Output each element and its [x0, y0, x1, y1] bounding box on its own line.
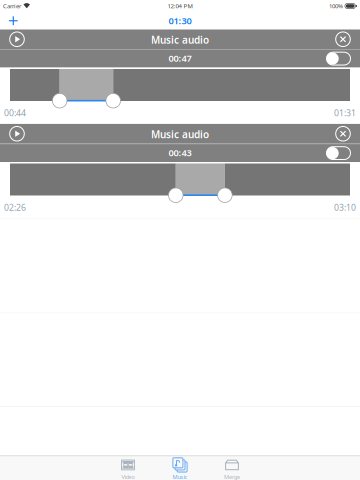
- button[interactable]: Play: [0, 30, 30, 49]
- staticText: Music audio: [151, 127, 209, 141]
- button[interactable]: Video: [102, 457, 154, 480]
- staticText: Merge: [224, 473, 240, 480]
- staticText: 01:31: [334, 107, 356, 119]
- staticText: Carrier: [3, 2, 21, 10]
- button[interactable]: Remove: [330, 124, 360, 143]
- staticText: 00:44: [4, 107, 26, 119]
- staticText: 12:04 PM: [167, 2, 192, 10]
- button[interactable]: Add: [0, 12, 26, 29]
- button[interactable]: Merge: [206, 457, 258, 480]
- staticText: 00:47: [168, 52, 191, 64]
- button[interactable]: Loop: [326, 144, 360, 162]
- staticText: 100%: [329, 2, 343, 10]
- staticText: 01:30: [168, 14, 191, 27]
- staticText: Music audio: [151, 33, 209, 46]
- staticText: 02:26: [4, 201, 26, 213]
- button[interactable]: Music: [154, 457, 206, 480]
- button[interactable]: Play: [0, 124, 30, 143]
- button[interactable]: Loop: [326, 50, 360, 68]
- button[interactable]: Remove: [330, 30, 360, 49]
- staticText: 03:10: [334, 201, 356, 213]
- staticText: 00:43: [168, 146, 191, 159]
- staticText: Video: [121, 473, 134, 480]
- staticText: Music: [172, 473, 187, 480]
